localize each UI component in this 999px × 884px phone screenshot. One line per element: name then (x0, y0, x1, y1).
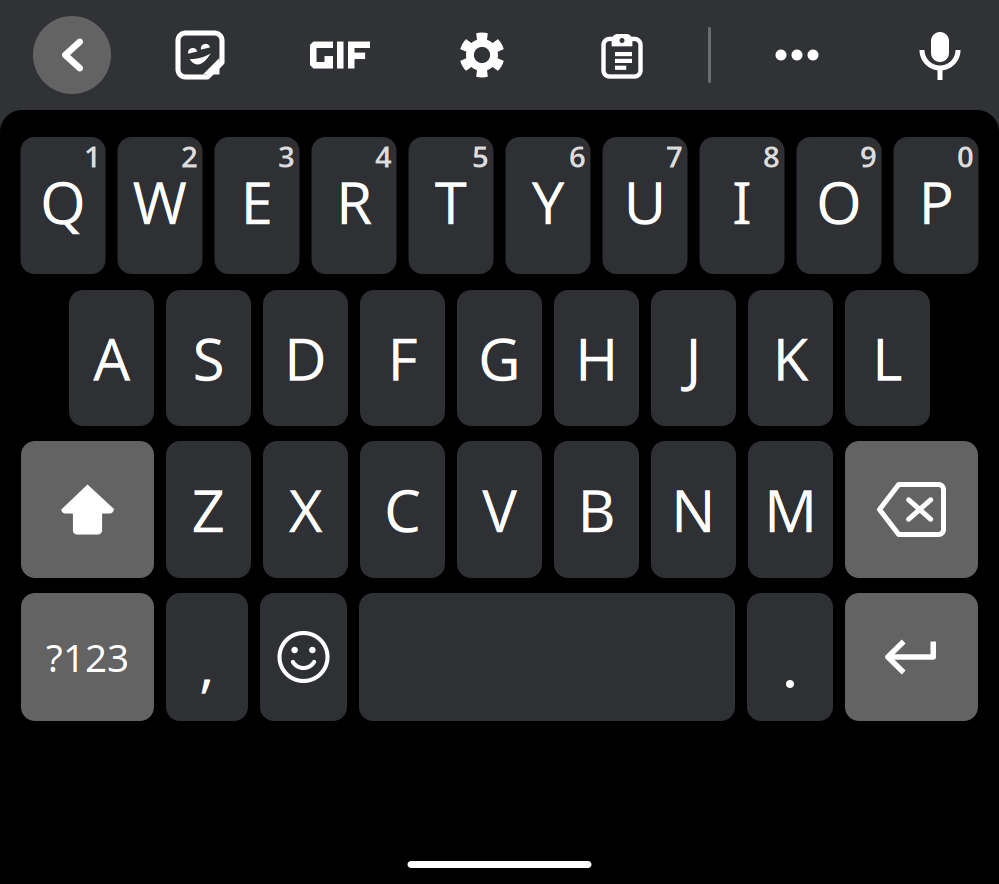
button[interactable]: C (360, 441, 445, 578)
button[interactable]: J (651, 290, 736, 426)
button[interactable]: 2 (117, 137, 202, 274)
button[interactable]: ?123 (21, 593, 154, 721)
staticText: K (772, 319, 808, 397)
button[interactable]: Settings (457, 14, 507, 96)
button[interactable]: 4 (311, 137, 396, 274)
button[interactable]: F (360, 290, 445, 426)
staticText: J (685, 319, 701, 397)
staticText: L (872, 319, 903, 397)
staticText: ?123 (46, 631, 129, 683)
staticText: , (199, 624, 215, 702)
staticText: 5 (472, 136, 489, 175)
button[interactable]: 0 (893, 137, 978, 274)
staticText: 7 (666, 136, 683, 175)
staticText: O (816, 162, 862, 240)
staticText: E (240, 162, 273, 240)
staticText: P (918, 162, 953, 240)
staticText: 3 (278, 136, 295, 175)
staticText: N (671, 470, 716, 548)
staticText: F (387, 319, 417, 397)
button[interactable]: 5 (408, 137, 493, 274)
button[interactable]: Emoji (260, 593, 347, 721)
staticText: M (764, 470, 817, 548)
button[interactable]: A (69, 290, 154, 426)
button[interactable]: Shift (21, 441, 154, 578)
button[interactable]: L (845, 290, 930, 426)
staticText: 2 (181, 136, 198, 175)
staticText: V (482, 470, 517, 548)
button[interactable]: X (263, 441, 348, 578)
button[interactable]: V (457, 441, 542, 578)
staticText: 6 (569, 136, 586, 175)
button[interactable]: M (748, 441, 833, 578)
staticText: Z (191, 470, 225, 548)
button[interactable]: S (166, 290, 251, 426)
staticText: Q (40, 162, 86, 240)
button[interactable]: 3 (214, 137, 299, 274)
button[interactable]: G (457, 290, 542, 426)
staticText: C (384, 470, 421, 548)
button[interactable]: More (763, 14, 831, 96)
staticText: R (336, 162, 372, 240)
staticText: 8 (763, 136, 780, 175)
button[interactable]: 8 (699, 137, 784, 274)
staticText: H (575, 319, 618, 397)
staticText: 9 (860, 136, 877, 175)
staticText: X (288, 470, 322, 548)
staticText: 1 (84, 136, 101, 175)
button[interactable]: Clipboard (599, 14, 645, 96)
staticText: I (732, 162, 752, 240)
button[interactable]: Voice input (913, 14, 967, 96)
button[interactable]: K (748, 290, 833, 426)
button[interactable]: 9 (796, 137, 881, 274)
staticText: S (192, 319, 224, 397)
staticText: D (284, 319, 327, 397)
button[interactable]: 7 (602, 137, 687, 274)
staticText: T (434, 162, 467, 240)
button[interactable]: Delete (845, 441, 978, 578)
button[interactable]: Stickers (175, 14, 225, 96)
button[interactable]: 1 (20, 137, 105, 274)
button[interactable]: H (554, 290, 639, 426)
staticText: 0 (957, 136, 974, 175)
button[interactable]: 6 (505, 137, 590, 274)
button[interactable]: B (554, 441, 639, 578)
button[interactable]: D (263, 290, 348, 426)
staticText: G (478, 319, 521, 397)
button[interactable]: Z (166, 441, 251, 578)
button[interactable]: Back (33, 14, 111, 96)
staticText: U (623, 162, 666, 240)
staticText: A (93, 319, 130, 397)
button[interactable]: , (166, 593, 248, 721)
staticText: Y (531, 162, 564, 240)
staticText: W (132, 162, 187, 240)
button[interactable] (747, 593, 833, 721)
staticText: 4 (375, 136, 392, 175)
button[interactable]: GIF (308, 14, 372, 96)
staticText: B (577, 470, 615, 548)
button[interactable]: N (651, 441, 736, 578)
button[interactable]: Return (845, 593, 978, 721)
